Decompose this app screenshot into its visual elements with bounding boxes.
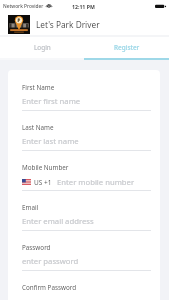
staticText: Password: [22, 243, 51, 252]
staticText: Enter last name: [22, 136, 79, 146]
staticText: 12:11 PM: [72, 3, 95, 10]
button[interactable]: Register: [84, 37, 169, 58]
staticText: First Name: [22, 83, 55, 92]
staticText: Let's Park Driver: [36, 19, 100, 30]
staticText: Email: [22, 203, 39, 212]
staticText: Network Provider: [3, 3, 44, 10]
staticText: Enter first name: [22, 96, 81, 106]
staticText: Confirm Password: [22, 283, 77, 292]
staticText: enter password: [22, 256, 79, 266]
button[interactable]: Login: [0, 37, 84, 58]
staticText: Enter email address: [22, 216, 94, 226]
staticText: Register: [114, 43, 140, 52]
staticText: Login: [34, 43, 51, 52]
staticText: Mobile Number: [22, 163, 69, 172]
staticText: Last Name: [22, 123, 54, 132]
staticText: Enter mobile number: [57, 177, 135, 187]
staticText: US +1: [34, 178, 52, 187]
